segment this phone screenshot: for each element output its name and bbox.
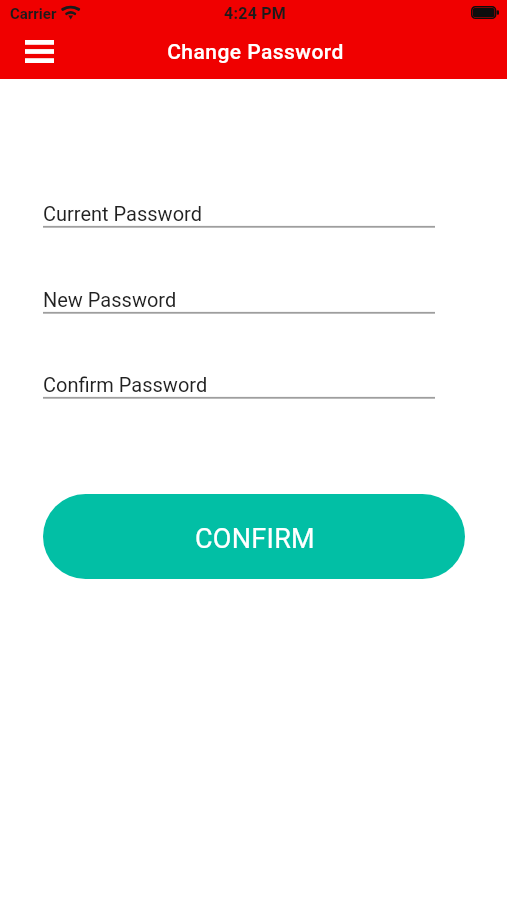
- staticText: Change Password: [2, 40, 507, 65]
- staticText: Carrier: [10, 5, 57, 23]
- button[interactable]: Confirm Password: [43, 372, 435, 404]
- staticText: CONFIRM: [195, 523, 315, 555]
- button[interactable]: CONFIRM: [43, 494, 465, 579]
- staticText: Confirm Password: [43, 373, 208, 396]
- button[interactable]: Current Password: [43, 201, 435, 233]
- staticText: Current Password: [43, 202, 202, 225]
- button[interactable]: Open navigation menu: [12, 27, 66, 76]
- button[interactable]: New Password: [43, 287, 435, 319]
- staticText: New Password: [43, 288, 177, 311]
- staticText: 4:24 PM: [224, 4, 287, 23]
